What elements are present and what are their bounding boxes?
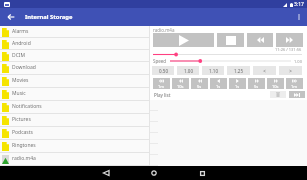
staticText: 1.25 [234, 68, 243, 74]
button[interactable]: Pictures [0, 114, 149, 127]
button[interactable]: 1s [210, 78, 227, 89]
staticText: 5s [254, 84, 259, 89]
button[interactable]: Android [0, 38, 149, 50]
staticText: Music [12, 90, 26, 97]
staticText: Android [12, 40, 31, 47]
staticText: 1s [235, 84, 240, 89]
button[interactable]: Stop [217, 33, 244, 47]
button[interactable]: Back [0, 8, 22, 26]
staticText: Internal Storage [25, 13, 73, 21]
staticText: Play list [154, 92, 171, 98]
button[interactable]: 0.50 [152, 66, 174, 75]
button[interactable]: More options [291, 8, 307, 26]
button[interactable]: < [253, 66, 276, 75]
staticText: 3:17 [294, 1, 304, 8]
staticText: 1.00 [294, 59, 302, 64]
button[interactable]: 10s [267, 78, 284, 89]
button[interactable]: Rewind [247, 33, 273, 47]
staticText: Alarms [12, 28, 29, 35]
button[interactable]: Delete [270, 91, 286, 98]
button[interactable]: Music [0, 88, 149, 101]
button[interactable]: 1m [286, 78, 303, 89]
button[interactable]: Play [153, 33, 214, 47]
button[interactable]: Back [82, 166, 130, 180]
staticText: Download [12, 64, 36, 71]
button[interactable]: 1.00 [177, 66, 199, 75]
staticText: 10s [177, 84, 184, 89]
button[interactable]: > [279, 66, 302, 75]
staticText: 1m [291, 84, 298, 89]
button[interactable]: Podcasts [0, 127, 149, 140]
staticText: Notifications [12, 103, 42, 110]
button[interactable]: Recents [178, 166, 226, 180]
staticText: 1s [216, 84, 221, 89]
button[interactable]: DCIM [0, 50, 149, 62]
button[interactable]: Slider [170, 58, 291, 64]
button[interactable]: 1.25 [227, 66, 250, 75]
button[interactable]: Movies [0, 75, 149, 88]
staticText: 0.50 [159, 68, 168, 74]
button[interactable]: Ringtones [0, 140, 149, 153]
staticText: 1.10 [209, 68, 218, 74]
staticText: < [263, 68, 266, 74]
button[interactable]: 5s [248, 78, 265, 89]
staticText: 1m [158, 84, 165, 89]
button[interactable]: Home [130, 166, 178, 180]
button[interactable]: radio.m4a [0, 153, 149, 166]
button[interactable]: 1m [153, 78, 170, 89]
staticText: > [289, 68, 292, 74]
staticText: Movies [12, 77, 29, 84]
staticText: Speed [153, 58, 167, 64]
staticText: 1.00 [184, 68, 193, 74]
staticText: radio.m4a [153, 27, 175, 33]
staticText: radio.m4a [12, 155, 36, 162]
staticText: Pictures [12, 116, 31, 123]
staticText: 11:26 / 131:56 [275, 47, 302, 52]
button[interactable]: 10s [172, 78, 189, 89]
staticText: 5s [197, 84, 202, 89]
button[interactable]: 1s [229, 78, 246, 89]
button[interactable]: Forward [276, 33, 303, 47]
staticText: Podcasts [12, 129, 33, 136]
staticText: Ringtones [12, 142, 36, 149]
staticText: 10s [272, 84, 279, 89]
button[interactable]: Notifications [0, 101, 149, 114]
button[interactable]: 5s [191, 78, 208, 89]
button[interactable]: 1.10 [202, 66, 224, 75]
button[interactable]: Slider [153, 52, 302, 57]
button[interactable]: Download [0, 62, 149, 75]
button[interactable]: Alarms [0, 26, 149, 38]
button[interactable]: Next track [289, 91, 305, 98]
staticText: DCIM [12, 52, 26, 59]
